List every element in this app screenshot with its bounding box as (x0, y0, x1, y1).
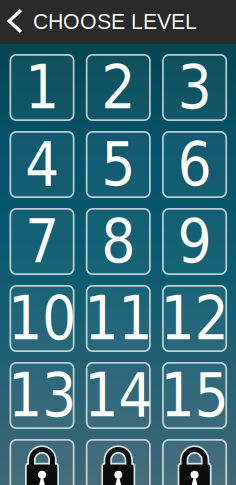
button[interactable]: Level 8 (86, 208, 151, 275)
button[interactable]: Level 14 (86, 362, 151, 429)
staticText: 10 (8, 284, 76, 353)
staticText: 15 (161, 361, 229, 430)
staticText: 4 (25, 130, 59, 199)
button[interactable]: Level 13 (9, 362, 74, 429)
staticText: 5 (101, 130, 135, 199)
button[interactable]: Level 18, locked (162, 439, 227, 485)
button[interactable]: Level 16, locked (9, 439, 74, 485)
staticText: 7 (25, 207, 59, 276)
staticText: 8 (101, 207, 135, 276)
button[interactable]: Level 1 (9, 54, 74, 121)
button[interactable]: Level 6 (162, 131, 227, 198)
button[interactable]: Level 5 (86, 131, 151, 198)
staticText: 9 (178, 207, 212, 276)
staticText: 11 (84, 284, 152, 353)
button[interactable]: Level 15 (162, 362, 227, 429)
button[interactable]: Level 11 (86, 285, 151, 352)
staticText: 1 (25, 53, 59, 122)
button[interactable]: Level 10 (9, 285, 74, 352)
button[interactable]: Level 7 (9, 208, 74, 275)
button[interactable]: Level 2 (86, 54, 151, 121)
staticText: CHOOSE LEVEL (33, 10, 197, 33)
staticText: 12 (161, 284, 229, 353)
staticText: 2 (101, 53, 135, 122)
button[interactable]: Level 12 (162, 285, 227, 352)
staticText: 6 (178, 130, 212, 199)
staticText: 13 (8, 361, 76, 430)
staticText: 14 (84, 361, 152, 430)
button[interactable]: Level 17, locked (86, 439, 151, 485)
button[interactable]: Level 3 (162, 54, 227, 121)
staticText: 3 (178, 53, 212, 122)
button[interactable]: Level 9 (162, 208, 227, 275)
button[interactable]: Level 4 (9, 131, 74, 198)
button[interactable]: Back (0, 0, 28, 44)
